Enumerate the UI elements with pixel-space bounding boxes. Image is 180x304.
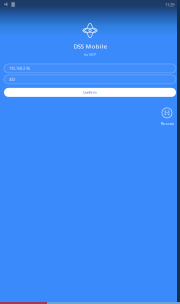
button[interactable]: 192.168.2.96 [0, 64, 180, 73]
staticText: 192.168.2.96 [9, 66, 30, 71]
staticText: 443 [9, 77, 15, 82]
button[interactable]: Re-scan [158, 108, 180, 126]
staticText: Confirm [83, 90, 97, 95]
staticText: Re-scan [160, 121, 173, 126]
button[interactable]: Confirm [0, 88, 180, 97]
staticText: 11:29 [165, 2, 174, 7]
staticText: for VDP [84, 52, 96, 57]
staticText: DSS Mobile [73, 42, 106, 50]
button[interactable]: 443 [0, 75, 180, 84]
